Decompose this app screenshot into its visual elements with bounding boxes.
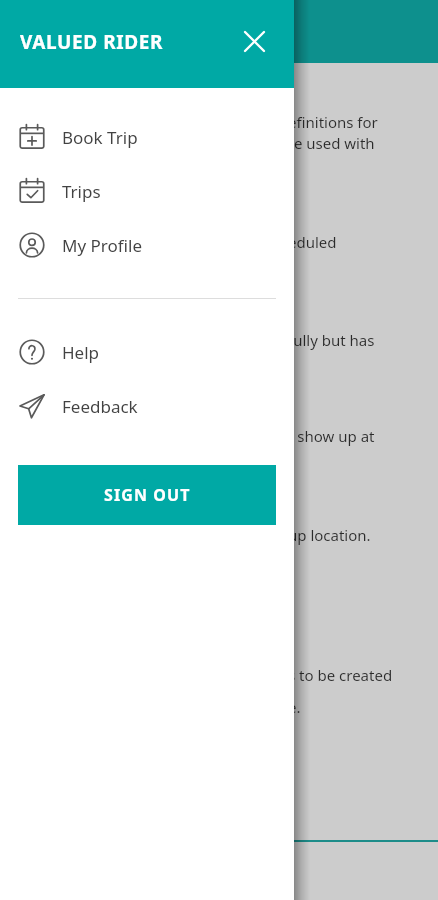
staticText: s to be created xyxy=(288,665,393,685)
staticText: t show up at xyxy=(288,426,375,446)
staticText: eduled xyxy=(288,232,337,252)
staticText: up location. xyxy=(288,525,371,545)
staticText: Feedback xyxy=(62,395,138,418)
staticText: SIGN OUT xyxy=(104,484,191,506)
button[interactable]: Trips xyxy=(0,164,294,218)
staticText: efinitions for xyxy=(288,112,378,132)
staticText: re used with xyxy=(288,133,375,153)
staticText: e. xyxy=(288,697,301,717)
staticText: Help xyxy=(62,341,100,364)
staticText: Trips xyxy=(62,180,101,203)
staticText: My Profile xyxy=(62,234,142,257)
button[interactable]: Help xyxy=(0,325,294,379)
staticText: Book Trip xyxy=(62,126,138,149)
staticText: VALUED RIDER xyxy=(20,29,164,55)
staticText: fully but has xyxy=(288,330,375,350)
button[interactable]: Book Trip xyxy=(0,110,294,164)
button[interactable]: Close navigation drawer xyxy=(233,20,275,62)
button[interactable]: Feedback xyxy=(0,379,294,433)
button[interactable]: SIGN OUT xyxy=(18,465,276,525)
button[interactable]: My Profile xyxy=(0,218,294,272)
